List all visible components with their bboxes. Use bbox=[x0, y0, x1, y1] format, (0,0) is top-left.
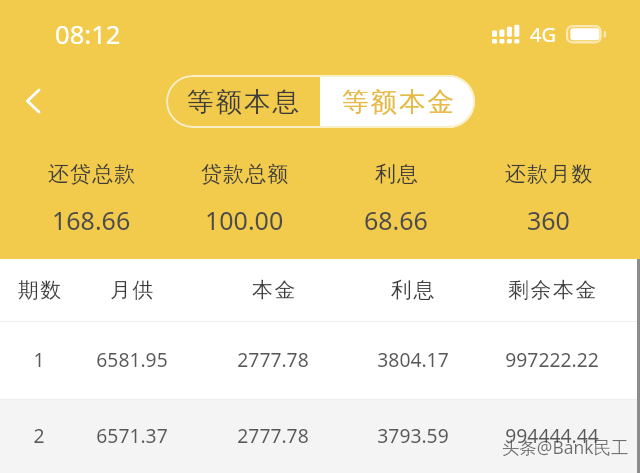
staticText: 08:12 bbox=[55, 17, 121, 52]
button[interactable]: 等额本息 bbox=[166, 75, 320, 128]
staticText: 等额本金 bbox=[341, 85, 455, 118]
button[interactable]: Back bbox=[7, 77, 55, 125]
staticText: 6571.37 bbox=[96, 422, 168, 448]
staticText: 期数 bbox=[18, 277, 63, 303]
staticText: 利息 bbox=[391, 277, 436, 303]
staticText: 4G bbox=[530, 21, 556, 48]
staticText: 168.66 bbox=[52, 203, 131, 237]
staticText: 2 bbox=[33, 422, 45, 448]
staticText: 100.00 bbox=[205, 203, 284, 237]
staticText: 997222.22 bbox=[505, 346, 599, 372]
staticText: 利息 bbox=[375, 161, 420, 187]
staticText: 360 bbox=[527, 203, 570, 237]
staticText: 还款月数 bbox=[505, 161, 594, 187]
button[interactable]: 1 bbox=[0, 322, 640, 399]
staticText: 贷款总额 bbox=[201, 161, 290, 187]
staticText: 等额本息 bbox=[186, 85, 300, 118]
staticText: 头条@Bank民工 bbox=[502, 435, 629, 459]
staticText: 1 bbox=[33, 346, 45, 372]
staticText: 68.66 bbox=[364, 203, 428, 237]
staticText: 头条@Bank民工 bbox=[503, 436, 630, 460]
staticText: 本金 bbox=[252, 277, 297, 303]
staticText: 3793.59 bbox=[377, 422, 449, 448]
staticText: 2777.78 bbox=[237, 346, 309, 372]
button[interactable]: 等额本金 bbox=[320, 75, 475, 128]
staticText: 6581.95 bbox=[96, 346, 168, 372]
staticText: 994444.44 bbox=[505, 422, 599, 448]
staticText: 剩余本金 bbox=[508, 277, 598, 303]
staticText: 2777.78 bbox=[237, 422, 309, 448]
staticText: 还贷总款 bbox=[48, 161, 137, 187]
staticText: 月供 bbox=[110, 277, 155, 303]
button[interactable]: 2 bbox=[0, 400, 640, 473]
staticText: 3804.17 bbox=[377, 346, 449, 372]
